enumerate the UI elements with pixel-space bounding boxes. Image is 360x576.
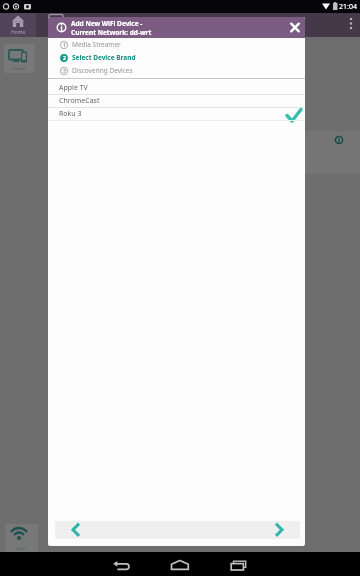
- button[interactable]: dd-wrt: [5, 524, 38, 552]
- staticText: 21:04: [339, 2, 357, 12]
- staticText: Devices: [12, 66, 27, 71]
- staticText: ChromeCast: [59, 96, 100, 106]
- staticText: 3: [63, 68, 66, 75]
- staticText: Apple TV: [59, 83, 88, 93]
- button[interactable]: Home: [0, 13, 36, 37]
- staticText: Roku 3: [59, 109, 82, 119]
- staticText: Add New WiFi Device -: [71, 19, 143, 28]
- staticText: Select Device Brand: [72, 53, 136, 62]
- button[interactable]: [260, 521, 300, 539]
- staticText: Media Streamer: [72, 40, 121, 49]
- staticText: 2: [63, 55, 66, 62]
- button[interactable]: [284, 17, 305, 38]
- staticText: Current Network: dd-wrt: [71, 28, 152, 37]
- staticText: dd-wrt: [15, 546, 28, 551]
- button[interactable]: ChromeCast: [48, 95, 305, 107]
- staticText: 1: [63, 42, 66, 49]
- button[interactable]: [120, 552, 240, 576]
- button[interactable]: [240, 552, 360, 576]
- button[interactable]: Devices: [4, 44, 35, 73]
- button[interactable]: [55, 521, 95, 539]
- button[interactable]: [0, 552, 120, 576]
- staticText: Discovering Devices: [72, 66, 133, 75]
- button[interactable]: Apple TV: [48, 82, 305, 94]
- staticText: Home: [11, 29, 26, 36]
- button[interactable]: Roku 3: [48, 108, 305, 120]
